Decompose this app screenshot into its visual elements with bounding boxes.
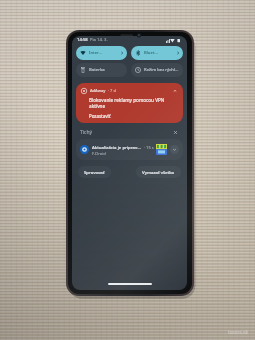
staticText: Blokovanie reklamy pomocou VPN aktívne bbox=[89, 97, 178, 109]
staticText: Aktualizácia je pripraven… bbox=[92, 144, 142, 150]
staticText: Režim bez rýchl… bbox=[144, 67, 179, 73]
button[interactable]: Clear silent notifications bbox=[171, 128, 179, 136]
button[interactable]: Režim bez rýchl… bbox=[131, 63, 183, 77]
button[interactable]: Internet bbox=[76, 46, 127, 60]
staticText: AdAway bbox=[90, 88, 106, 93]
staticText: · 15 s bbox=[144, 145, 154, 150]
staticText: Tichý bbox=[80, 129, 93, 136]
staticText: Vymazať všetko bbox=[142, 169, 175, 175]
staticText: 14:58 bbox=[77, 37, 88, 43]
button[interactable]: AdAway bbox=[76, 83, 183, 123]
staticText: Bluetooth bbox=[144, 50, 160, 56]
staticText: · 7 d bbox=[108, 88, 116, 93]
button[interactable]: Spravovať bbox=[78, 166, 111, 178]
staticText: Spravovať bbox=[84, 169, 105, 175]
button[interactable]: Aktualizácia je pripraven… bbox=[76, 139, 183, 160]
button[interactable]: Bluetooth bbox=[131, 46, 183, 60]
button[interactable]: Collapse notification bbox=[171, 87, 178, 94]
staticText: Baterka bbox=[89, 67, 105, 73]
staticText: Internet bbox=[89, 50, 104, 56]
button[interactable]: Expand notification bbox=[170, 145, 179, 154]
staticText: F-Droid bbox=[92, 151, 106, 156]
staticText: Pia 14. 3. bbox=[90, 37, 108, 43]
button[interactable]: Vymazať všetko bbox=[136, 166, 181, 178]
staticText: bazos.sk bbox=[228, 329, 249, 336]
button[interactable]: Pozastaviť bbox=[89, 113, 111, 119]
button[interactable]: Baterka bbox=[76, 63, 127, 77]
